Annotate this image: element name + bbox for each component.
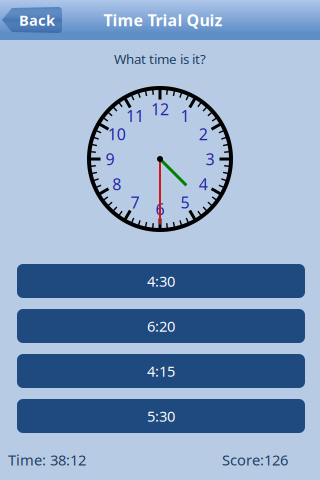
staticText: 12 [151, 98, 169, 120]
staticText: 5:30 [147, 406, 175, 426]
staticText: 2 [199, 123, 208, 145]
button[interactable]: 4:30 [17, 264, 305, 298]
staticText: 6 [155, 198, 164, 220]
staticText: 5 [180, 192, 189, 213]
staticText: Score:126 [222, 450, 288, 469]
staticText: 4:15 [147, 361, 175, 381]
staticText: 11 [126, 105, 144, 126]
staticText: Back [19, 10, 55, 30]
staticText: 9 [105, 148, 114, 170]
staticText: 10 [108, 123, 126, 145]
staticText: Time: 38:12 [8, 450, 86, 469]
staticText: 7 [130, 192, 139, 213]
staticText: Time Trial Quiz [103, 9, 222, 31]
button[interactable]: 6:20 [17, 309, 305, 343]
button[interactable]: 5:30 [17, 399, 305, 433]
staticText: 4 [199, 173, 208, 195]
staticText: What time is it? [114, 50, 206, 68]
staticText: 4:30 [147, 271, 175, 291]
staticText: 3 [205, 148, 214, 170]
staticText: 6:20 [147, 316, 175, 336]
button[interactable]: 4:15 [17, 354, 305, 388]
staticText: 8 [112, 173, 121, 195]
staticText: 1 [180, 105, 189, 126]
button[interactable]: Back [2, 7, 62, 33]
